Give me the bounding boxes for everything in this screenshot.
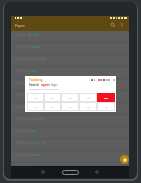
button[interactable]: Home xyxy=(62,170,79,175)
button[interactable]: 00 xyxy=(79,93,97,102)
staticText: something to do with mode xyxy=(29,88,58,91)
staticText: et xyxy=(32,92,36,97)
staticText: exerc xyxy=(31,140,40,145)
staticText: Sed do xyxy=(16,68,27,73)
staticText: Nisi ut xyxy=(16,164,27,167)
staticText: Dolor sit xyxy=(16,44,30,49)
staticText: 00 xyxy=(51,105,54,108)
button[interactable]: 00 xyxy=(44,102,61,111)
staticText: Ut labore xyxy=(16,92,31,97)
staticText: laboris xyxy=(30,152,41,157)
button[interactable]: Dolor sit xyxy=(11,43,129,55)
button[interactable]: 00 xyxy=(44,93,61,102)
button[interactable]: Recents xyxy=(95,170,99,174)
button[interactable]: Lorem xyxy=(11,31,129,43)
staticText: ipsum xyxy=(28,32,38,37)
button[interactable]: Sed do xyxy=(11,67,129,79)
button[interactable]: 00 xyxy=(79,102,97,111)
staticText: etur xyxy=(30,56,37,61)
button[interactable]: Ut enim xyxy=(11,115,129,127)
staticText: agent xyxy=(41,83,50,87)
staticText: Tracking xyxy=(29,78,43,82)
staticText: Veniam xyxy=(16,128,28,133)
staticText: aliquip xyxy=(28,164,39,167)
staticText: Search xyxy=(29,83,40,87)
staticText: Paper xyxy=(15,23,26,28)
staticText: Ullamco xyxy=(16,152,29,157)
staticText: 00 xyxy=(69,96,72,99)
staticText: ex xyxy=(40,164,44,167)
button[interactable]: 00 xyxy=(61,102,79,111)
button[interactable]: Nisi ut xyxy=(11,163,129,166)
staticText: dolore xyxy=(37,92,48,97)
staticText: 00 xyxy=(87,105,90,108)
staticText: 00 xyxy=(87,96,90,99)
button[interactable]: Search xyxy=(110,22,116,28)
staticText: quis xyxy=(29,128,36,133)
button[interactable]: 00 xyxy=(61,93,79,102)
staticText: Lorem xyxy=(16,32,27,37)
button[interactable]: 00 xyxy=(27,102,44,111)
button[interactable]: Back xyxy=(41,170,45,174)
button[interactable]: Ut labore xyxy=(11,91,129,103)
staticText: 00 xyxy=(51,96,54,99)
staticText: incidi xyxy=(30,80,39,85)
button[interactable]: Veniam xyxy=(11,127,129,139)
staticText: adipi xyxy=(38,56,46,61)
staticText: 00 xyxy=(34,105,37,108)
button[interactable]: 00 xyxy=(97,102,115,111)
button[interactable]: GO xyxy=(97,93,115,102)
staticText: aliqua xyxy=(29,104,39,109)
staticText: Magna xyxy=(16,104,28,109)
button[interactable]: 00 xyxy=(27,93,44,102)
staticText: ad xyxy=(30,116,34,121)
staticText: logic xyxy=(51,83,58,87)
button[interactable]: Magna xyxy=(11,103,129,115)
staticText: Consect xyxy=(16,56,29,61)
staticText: eiusm xyxy=(28,68,38,73)
staticText: Tempor xyxy=(16,80,29,85)
button[interactable]: Consect xyxy=(11,55,129,67)
staticText: ita xyxy=(41,140,46,145)
button[interactable]: Nostrud xyxy=(11,139,129,151)
staticText: Nostrud xyxy=(16,140,30,145)
button[interactable]: Ullamco xyxy=(11,151,129,163)
staticText: 00 xyxy=(69,105,72,108)
staticText: 00 xyxy=(34,96,37,99)
staticText: minim xyxy=(35,116,46,121)
staticText: GO xyxy=(104,96,108,99)
button[interactable]: Add xyxy=(120,155,129,164)
button[interactable]: More options xyxy=(119,22,125,28)
button[interactable]: Tempor xyxy=(11,79,129,91)
staticText: Ut enim xyxy=(16,116,29,121)
staticText: 00 xyxy=(105,105,108,108)
staticText: amet xyxy=(31,44,40,49)
